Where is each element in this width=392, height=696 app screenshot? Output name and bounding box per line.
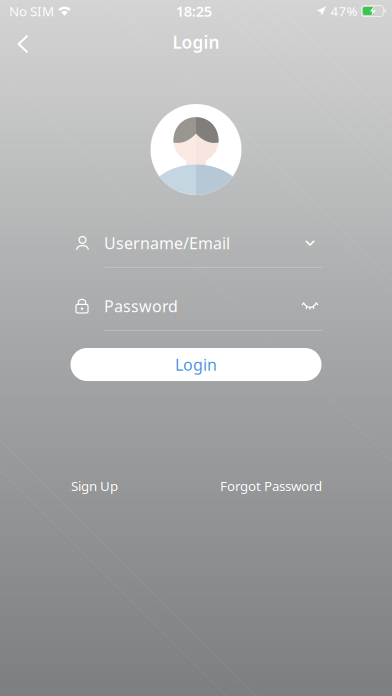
staticText: Sign Up	[71, 477, 118, 495]
staticText: Forgot Password	[220, 477, 322, 495]
staticText: No SIM	[9, 2, 54, 20]
button[interactable]: Forgot Password	[220, 471, 322, 501]
button[interactable]: Show password	[297, 295, 323, 317]
staticText: 18:25	[176, 1, 212, 21]
staticText: Username/Email	[104, 232, 230, 254]
staticText: Password	[104, 295, 178, 317]
button[interactable]: Back	[1, 18, 45, 66]
staticText: Login	[175, 354, 217, 375]
staticText: Login	[172, 30, 219, 53]
button[interactable]: Sign Up	[71, 471, 118, 501]
staticText: 47%	[330, 2, 357, 20]
button[interactable]: Login	[70, 348, 321, 381]
button[interactable]: Show saved accounts	[297, 232, 323, 254]
